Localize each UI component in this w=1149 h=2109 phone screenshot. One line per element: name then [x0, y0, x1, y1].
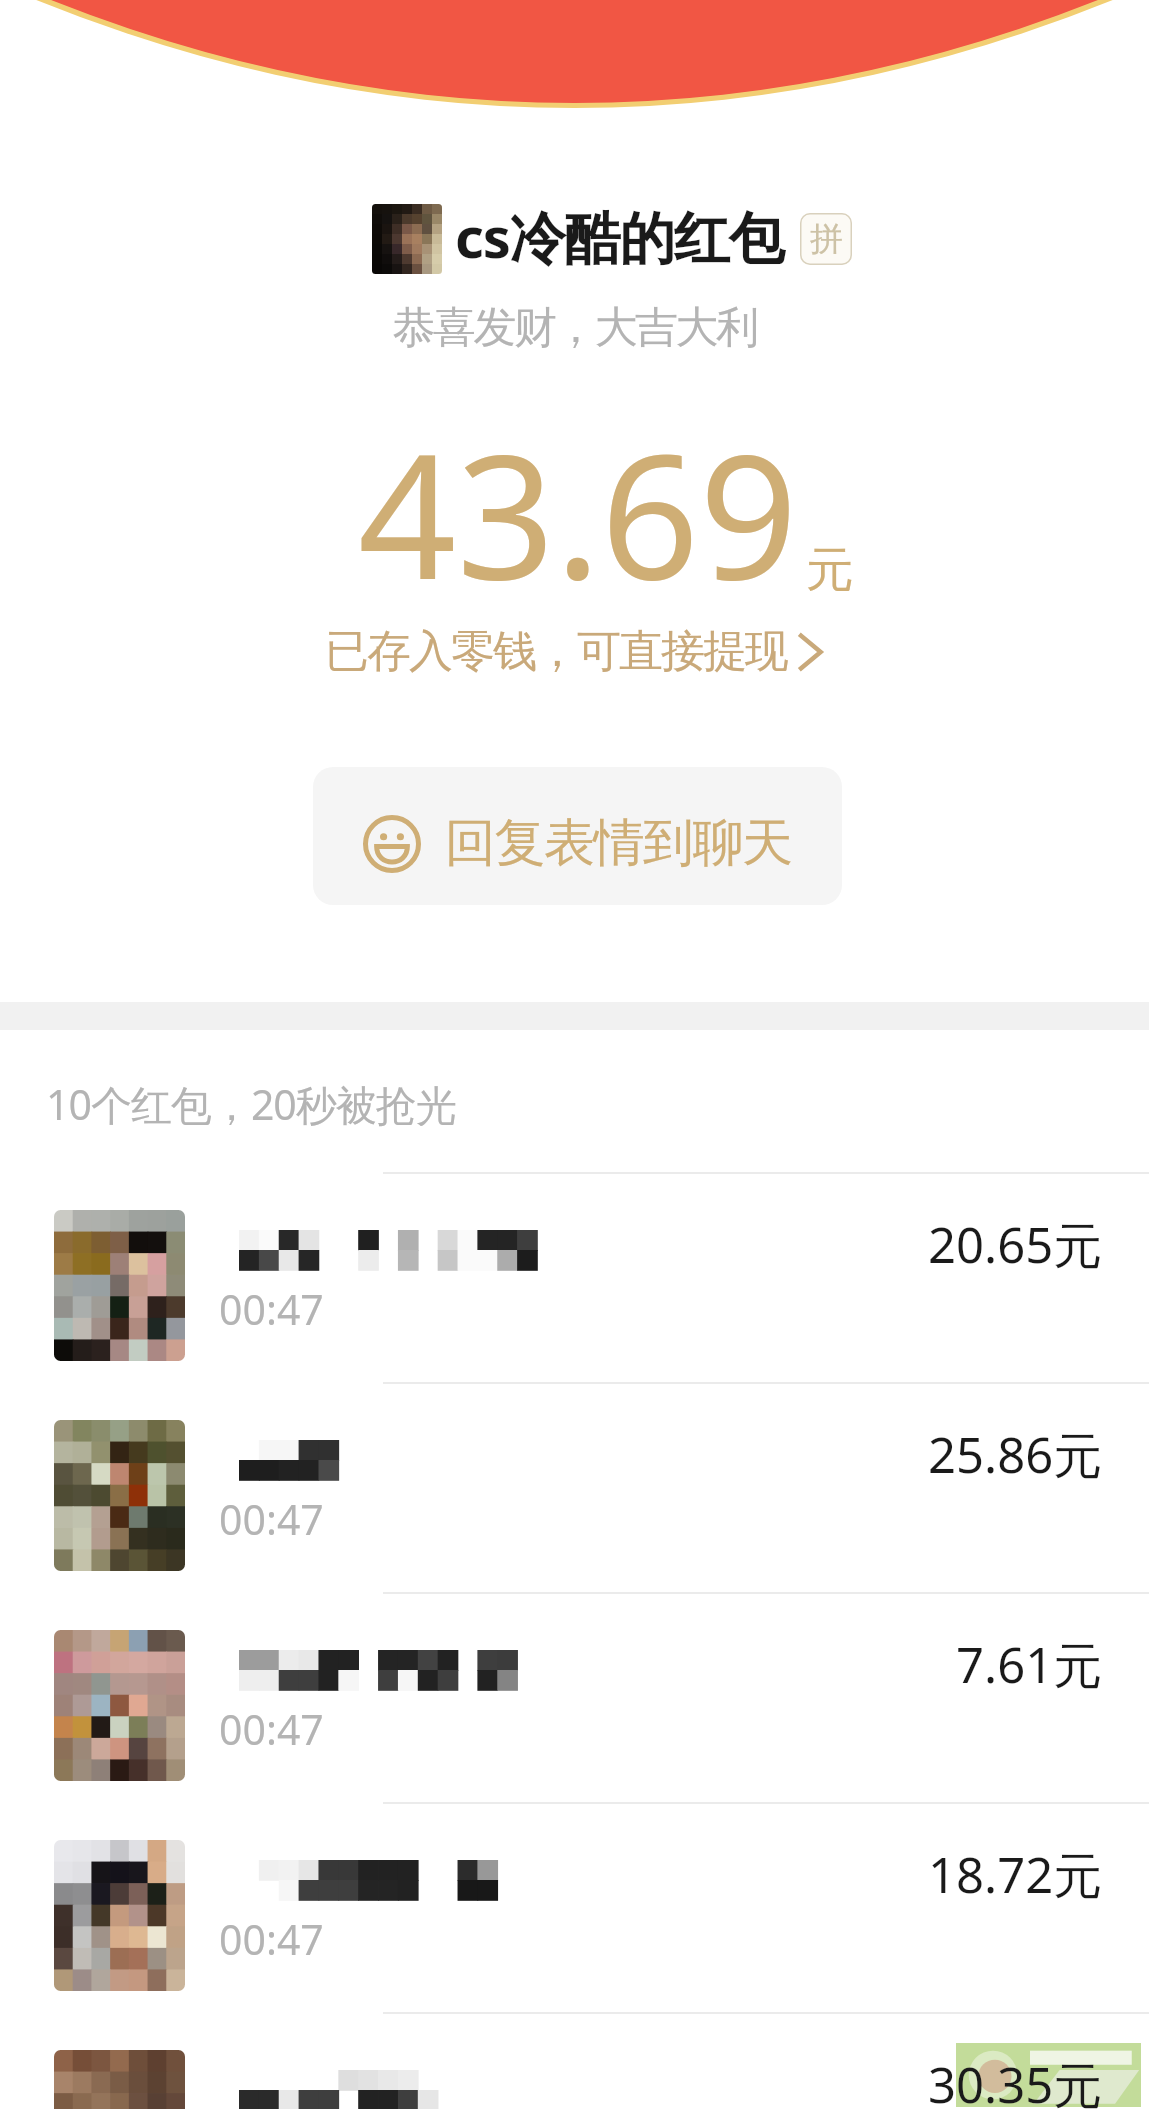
button[interactable]: Group red packet badge [800, 213, 852, 265]
staticText: 20.65元 [928, 1211, 1103, 1278]
staticText: 10个红包，20秒被抢光 [46, 1076, 456, 1132]
staticText: 00:47 [219, 1701, 324, 1757]
button[interactable]: 00:47 [0, 1174, 1149, 1382]
button[interactable]: 00:47 [0, 1594, 1149, 1802]
staticText: 回复表情到聊天 [445, 811, 792, 875]
staticText: 25.86元 [928, 1421, 1103, 1488]
staticText: 00:47 [219, 1281, 324, 1337]
button[interactable]: 00:47 [0, 2014, 1149, 2109]
button[interactable]: Sender profile photo [372, 204, 442, 274]
staticText: 7.61元 [956, 1631, 1103, 1698]
staticText: 43.69 [358, 395, 798, 629]
staticText: 拼 [810, 218, 843, 260]
staticText: 已存入零钱，可直接提现 [326, 624, 788, 679]
staticText: 00:47 [219, 1911, 324, 1967]
staticText: 元 [806, 540, 854, 600]
button[interactable]: 00:47 [0, 1804, 1149, 2012]
staticText: 18.72元 [928, 1841, 1103, 1908]
button[interactable]: 已存入零钱，可直接提现 [0, 624, 1149, 679]
staticText: 00:47 [219, 1491, 324, 1547]
button[interactable]: 回复表情到聊天 [313, 767, 842, 905]
button[interactable]: 00:47 [0, 1384, 1149, 1592]
staticText: 恭喜发财，大吉大利 [0, 301, 1149, 355]
button[interactable]: cs冷酷的红包 [455, 198, 784, 274]
staticText: 30.35元 [928, 2051, 1103, 2109]
